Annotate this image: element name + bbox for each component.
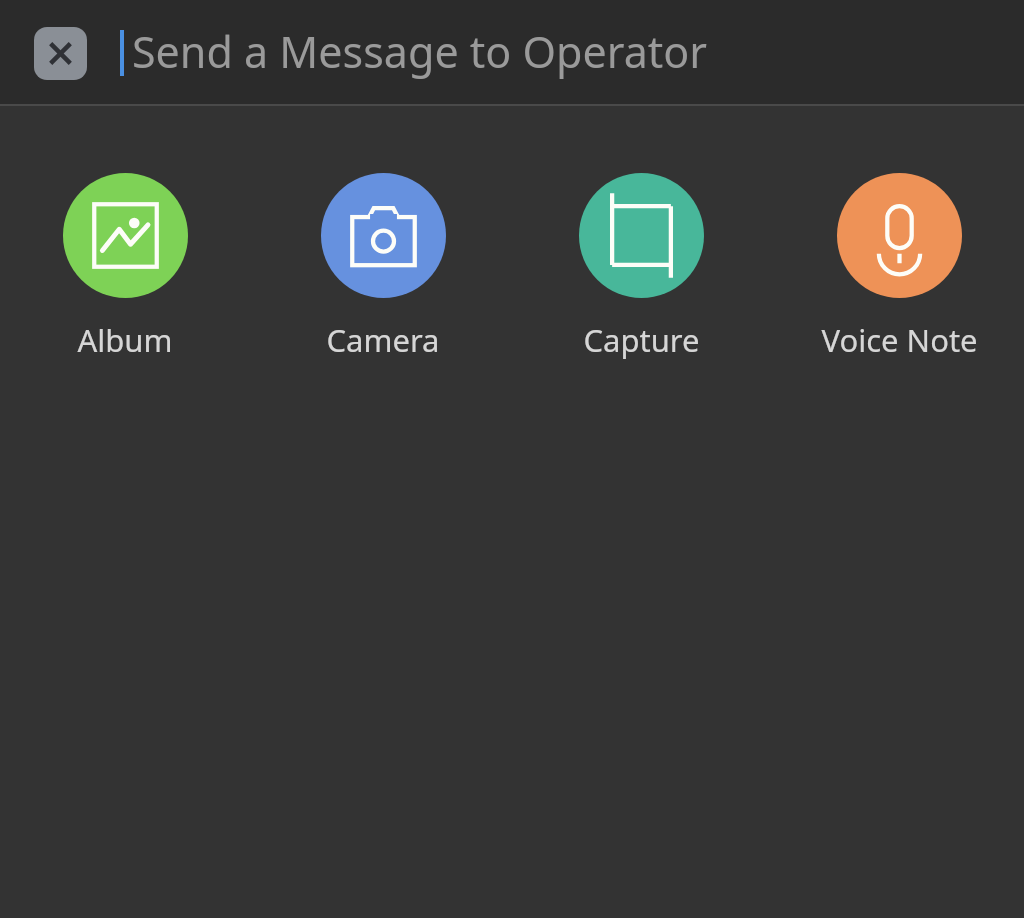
staticText: Capture [583,319,700,361]
button[interactable]: Voice Note [819,173,979,361]
staticText: Voice Note [821,319,978,361]
button[interactable]: Capture [561,173,721,361]
button[interactable]: Close [34,27,87,80]
staticText: Album [77,319,173,361]
button[interactable]: Camera [303,173,463,361]
button[interactable]: Album [45,173,205,361]
staticText: Send a Message to Operator [132,22,708,81]
staticText: Camera [326,319,440,361]
